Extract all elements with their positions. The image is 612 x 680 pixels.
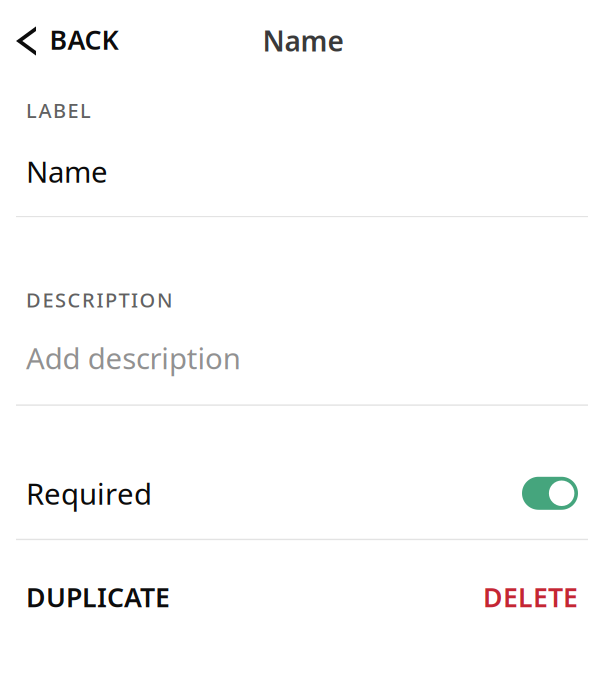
staticText: Name <box>26 152 108 191</box>
button[interactable]: Required <box>0 406 612 539</box>
button[interactable]: DUPLICATE <box>0 563 186 631</box>
staticText: BACK <box>49 22 118 57</box>
staticText: DUPLICATE <box>26 579 170 615</box>
button[interactable]: LABEL <box>0 82 612 216</box>
button[interactable]: BACK <box>0 14 156 68</box>
staticText: DELETE <box>483 579 578 615</box>
button[interactable]: DELETE <box>467 563 612 631</box>
button[interactable]: DESCRIPTION <box>0 217 612 404</box>
staticText: Name <box>262 22 343 59</box>
staticText: LABEL <box>26 97 91 124</box>
staticText: Add description <box>26 338 241 377</box>
staticText: DESCRIPTION <box>26 286 173 313</box>
staticText: Required <box>26 474 152 513</box>
